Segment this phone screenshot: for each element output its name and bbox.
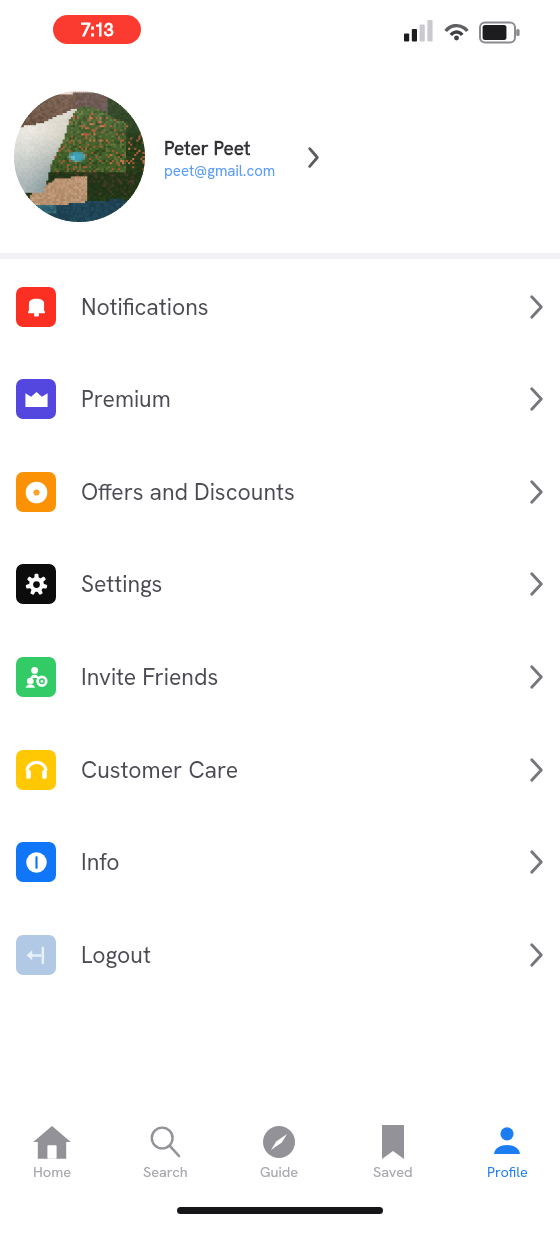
button[interactable]: Logout [0,908,560,1001]
staticText: Search [143,1162,188,1181]
button[interactable]: Invite Friends [0,630,560,723]
staticText: Guide [260,1162,299,1181]
other: Open profile [298,142,328,172]
staticText: Peter Peet [164,136,251,161]
button[interactable]: Premium [0,352,560,445]
button[interactable]: Peter Peet [0,60,560,253]
button[interactable]: Offers and Discounts [0,445,560,538]
staticText: 7:13 [81,19,114,41]
staticText: Settings [81,569,163,599]
staticText: Home [33,1162,72,1181]
staticText: Offers and Discounts [81,477,295,507]
staticText: Logout [81,940,151,970]
staticText: peet@gmail.com [164,161,276,181]
button[interactable]: Notifications [0,260,560,353]
staticText: Saved [373,1162,413,1181]
button[interactable]: Info [0,815,560,908]
button[interactable]: Settings [0,537,560,630]
staticText: Profile [487,1162,528,1181]
button[interactable]: Customer Care [0,723,560,816]
staticText: Premium [81,384,171,414]
button[interactable]: Profile [458,1122,556,1200]
button[interactable]: Search [116,1122,214,1200]
button[interactable]: Home [3,1122,101,1200]
staticText: Info [81,847,120,877]
staticText: Invite Friends [81,662,219,692]
staticText: Notifications [81,292,209,322]
staticText: Customer Care [81,755,239,785]
button[interactable]: Guide [230,1122,328,1200]
button[interactable]: Recording, 7:13 [53,15,141,44]
button[interactable]: Saved [344,1122,442,1200]
